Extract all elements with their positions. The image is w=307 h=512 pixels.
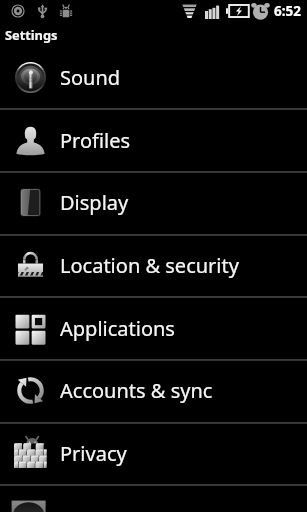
button[interactable]: Privacy: [0, 422, 307, 485]
staticText: Sound: [60, 64, 121, 91]
button[interactable]: Sound: [0, 46, 307, 109]
button[interactable]: SD card & storage: [0, 485, 307, 512]
button[interactable]: Profiles: [0, 109, 307, 172]
button[interactable]: Applications: [0, 297, 307, 360]
staticText: Applications: [60, 315, 175, 342]
staticText: 6:52: [274, 2, 301, 20]
staticText: Location & security: [60, 252, 239, 279]
button[interactable]: Location & security: [0, 234, 307, 297]
button[interactable]: Display: [0, 171, 307, 234]
staticText: Accounts & sync: [60, 377, 213, 404]
staticText: Settings: [5, 26, 58, 43]
button[interactable]: Accounts & sync: [0, 359, 307, 422]
staticText: Profiles: [60, 127, 131, 154]
staticText: Privacy: [60, 440, 127, 467]
staticText: Display: [60, 189, 129, 216]
